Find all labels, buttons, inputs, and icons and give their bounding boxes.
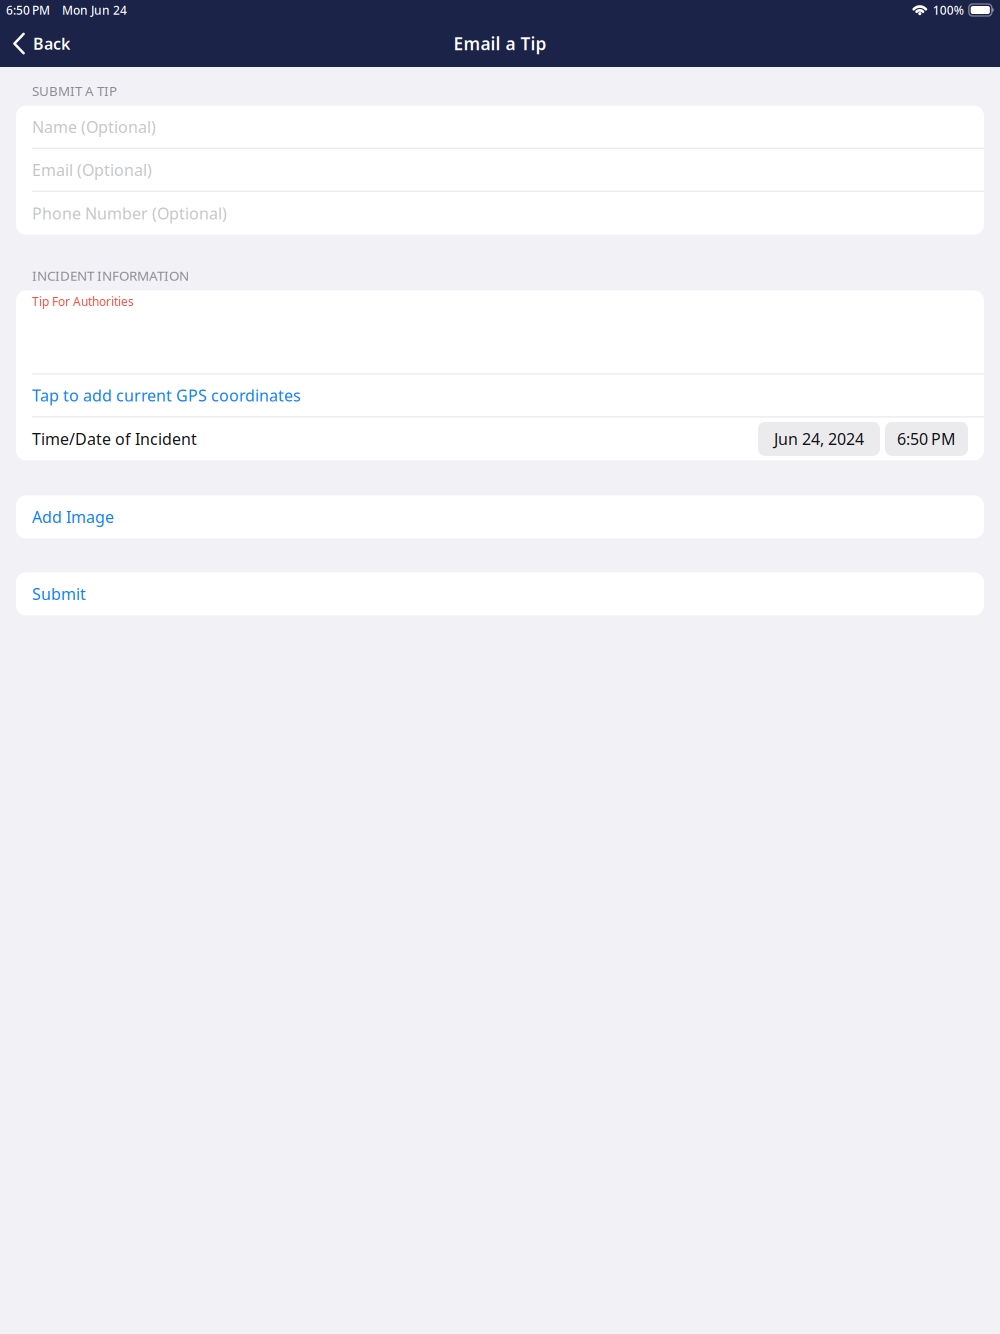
button[interactable]: Add Image xyxy=(0,495,1000,538)
button[interactable]: Back xyxy=(0,24,70,62)
staticText: Time/Date of Incident xyxy=(32,428,197,449)
staticText: Tip For Authorities xyxy=(32,293,134,309)
staticText: Tap to add current GPS coordinates xyxy=(32,385,301,406)
staticText: 100% xyxy=(933,2,964,18)
button[interactable]: Submit xyxy=(0,572,1000,615)
staticText: 6:50 PM xyxy=(6,2,50,18)
button[interactable]: Tip For Authorities xyxy=(16,290,984,373)
staticText: Add Image xyxy=(32,506,114,527)
button[interactable]: Name (Optional) xyxy=(16,106,984,148)
staticText: Email (Optional) xyxy=(32,159,152,180)
staticText: Jun 24, 2024 xyxy=(774,428,864,449)
button[interactable]: Email (Optional) xyxy=(16,149,984,191)
staticText: SUBMIT A TIP xyxy=(32,82,117,100)
staticText: Email a Tip xyxy=(453,32,546,55)
staticText: Submit xyxy=(32,583,86,604)
button[interactable]: Phone Number (Optional) xyxy=(16,192,984,235)
staticText: Phone Number (Optional) xyxy=(32,203,227,224)
button[interactable]: 6:50 PM xyxy=(885,422,968,456)
staticText: Name (Optional) xyxy=(32,116,156,137)
staticText: Back xyxy=(33,33,70,54)
staticText: 6:50 PM xyxy=(897,428,956,449)
staticText: INCIDENT INFORMATION xyxy=(32,267,189,284)
button[interactable]: Jun 24, 2024 xyxy=(758,422,880,456)
button[interactable]: Tap to add current GPS coordinates xyxy=(16,374,984,416)
staticText: Mon Jun 24 xyxy=(62,2,127,18)
